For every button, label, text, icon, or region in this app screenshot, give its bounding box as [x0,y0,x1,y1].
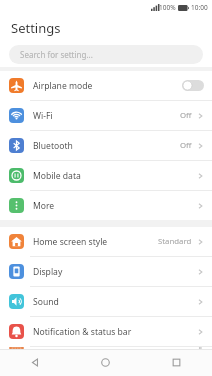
button[interactable]: Home screen style [0,227,212,256]
button[interactable]: Notification & status bar [0,317,212,346]
staticText: More [33,200,55,212]
button[interactable]: Bluetooth [0,131,212,160]
staticText: Settings [11,19,61,37]
button[interactable]: Navigation key [0,347,212,349]
button[interactable]: Airplane mode toggle [182,80,204,91]
staticText: Search for setting... [20,49,93,60]
button[interactable]: Sound [0,287,212,316]
staticText: Wi-Fi [33,110,53,122]
staticText: Off [180,140,192,151]
staticText: Bluetooth [33,140,73,152]
button[interactable]: Wi-Fi [0,101,212,130]
staticText: Home screen style [33,236,108,248]
button[interactable]: Display [0,257,212,286]
button[interactable]: Home [70,349,141,376]
button[interactable]: Airplane mode [0,71,212,100]
button[interactable]: Mobile data [0,161,212,190]
staticText: Off [180,110,192,121]
staticText: 10:00 [191,3,208,12]
button[interactable]: Recents [141,349,212,376]
staticText: Airplane mode [33,80,93,92]
staticText: Display [33,266,63,278]
staticText: Standard [158,236,192,247]
button[interactable]: Back [0,349,70,376]
staticText: 100% [159,3,176,12]
staticText: Mobile data [33,170,81,182]
staticText: Sound [33,296,59,308]
button[interactable]: More [0,191,212,220]
staticText: Notification & status bar [33,326,132,338]
button[interactable]: Search for setting... [9,45,203,64]
